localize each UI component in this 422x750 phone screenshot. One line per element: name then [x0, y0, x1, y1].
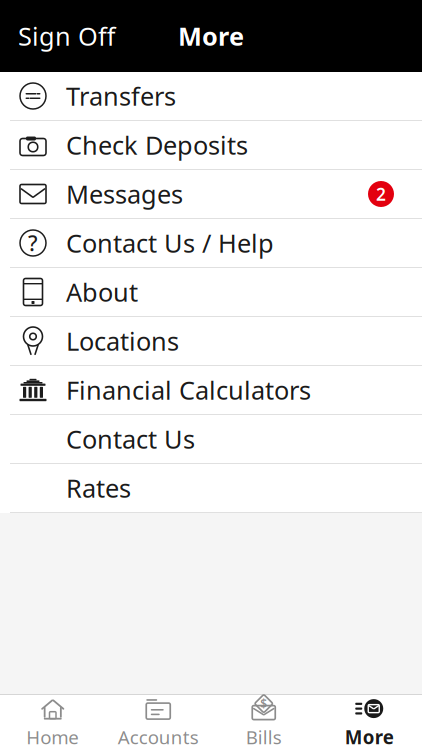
staticText: ?	[28, 229, 38, 257]
button[interactable]: Sign Off	[0, 11, 133, 61]
staticText: Messages	[66, 177, 183, 211]
button[interactable]: Rates	[0, 464, 422, 513]
button[interactable]: Home	[0, 694, 105, 750]
staticText: Sign Off	[18, 19, 115, 53]
staticText: Home	[26, 725, 79, 749]
staticText: $	[260, 696, 267, 711]
staticText: Contact Us / Help	[66, 226, 274, 260]
button[interactable]: Locations	[0, 317, 422, 366]
staticText: 2	[376, 182, 386, 205]
button[interactable]: ?	[0, 219, 422, 268]
staticText: Rates	[66, 471, 131, 505]
button[interactable]: About	[0, 268, 422, 317]
staticText: Bills	[246, 725, 282, 749]
staticText: More	[345, 725, 394, 749]
staticText: Financial Calculators	[66, 373, 311, 407]
staticText: Contact Us	[66, 422, 195, 456]
button[interactable]: More	[316, 694, 422, 750]
button[interactable]: Messages	[0, 170, 422, 219]
staticText: Transfers	[66, 79, 176, 113]
staticText: More	[178, 19, 244, 53]
staticText: About	[66, 275, 138, 309]
staticText: Accounts	[118, 725, 199, 749]
button[interactable]: Transfers	[0, 72, 422, 121]
button[interactable]: Accounts	[105, 694, 211, 750]
button[interactable]: Check Deposits	[0, 121, 422, 170]
button[interactable]: $	[211, 694, 316, 750]
staticText: Check Deposits	[66, 128, 248, 162]
staticText: Locations	[66, 324, 179, 358]
button[interactable]: Contact Us	[0, 415, 422, 464]
button[interactable]: Financial Calculators	[0, 366, 422, 415]
